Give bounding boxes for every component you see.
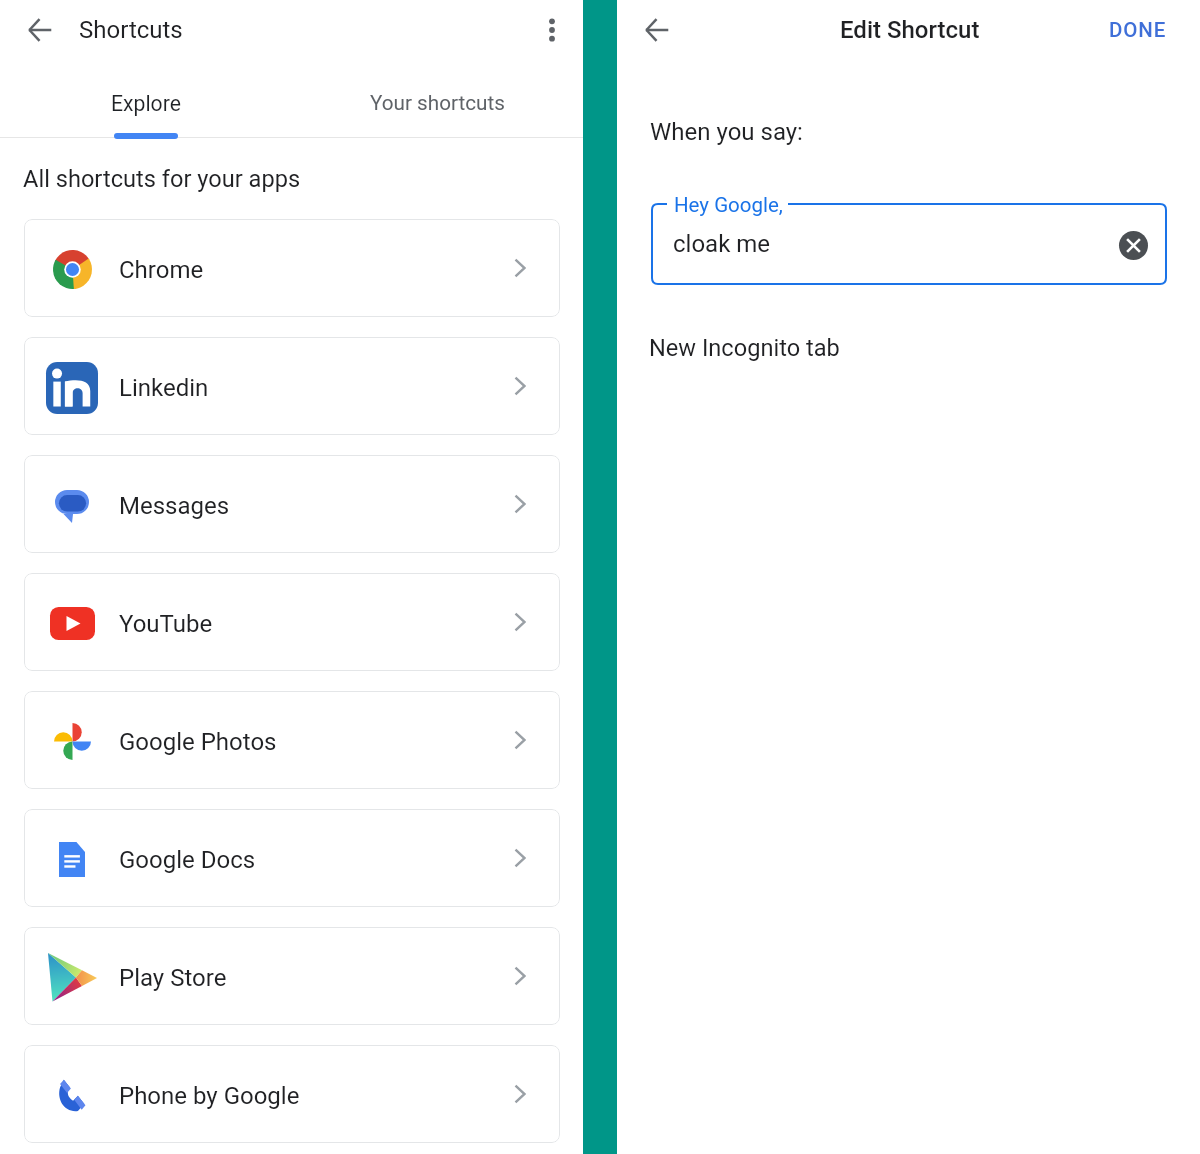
staticText: Your shortcuts <box>370 91 505 115</box>
staticText: Edit Shortcut <box>840 16 980 44</box>
staticText: Messages <box>119 492 230 520</box>
staticText: All shortcuts for your apps <box>23 165 301 193</box>
button[interactable]: Navigate up <box>22 12 58 48</box>
button[interactable]: Google Photos <box>24 691 560 789</box>
button[interactable]: Google Docs <box>24 809 560 907</box>
button[interactable]: Chrome <box>24 219 560 317</box>
button[interactable]: Linkedin <box>24 337 560 435</box>
staticText: Shortcuts <box>79 16 183 44</box>
button[interactable]: Play Store <box>24 927 560 1025</box>
staticText: DONE <box>1109 18 1167 42</box>
button[interactable]: Phone by Google <box>24 1045 560 1143</box>
staticText: New Incognito tab <box>649 334 840 362</box>
staticText: Linkedin <box>119 374 209 402</box>
button[interactable]: Your shortcuts <box>291 60 583 138</box>
staticText: Google Photos <box>119 728 277 756</box>
button[interactable]: YouTube <box>24 573 560 671</box>
staticText: Phone by Google <box>119 1082 300 1110</box>
staticText: YouTube <box>119 610 213 638</box>
staticText: When you say: <box>650 118 803 146</box>
staticText: Play Store <box>119 964 227 992</box>
staticText: Hey Google, <box>674 193 783 217</box>
button[interactable]: Navigate up <box>639 12 675 48</box>
button[interactable]: DONE <box>1101 10 1175 50</box>
staticText: Google Docs <box>119 846 256 874</box>
staticText: Explore <box>111 91 181 116</box>
button[interactable]: Messages <box>24 455 560 553</box>
button[interactable]: Explore <box>0 60 291 138</box>
button[interactable]: More options <box>534 12 570 48</box>
staticText: cloak me <box>673 230 771 258</box>
staticText: Chrome <box>119 256 204 284</box>
button[interactable]: Clear text <box>1115 227 1151 263</box>
